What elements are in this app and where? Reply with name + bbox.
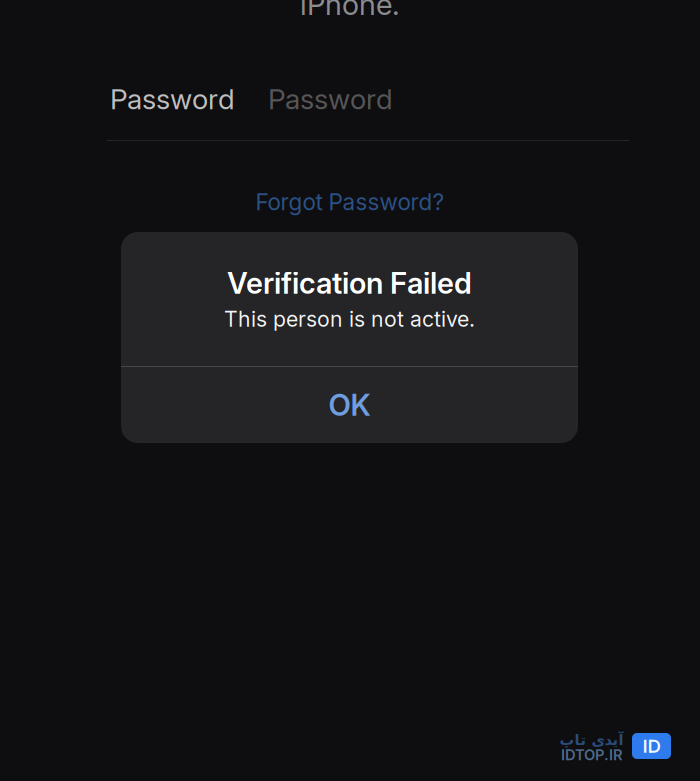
staticText: iPhone. (300, 0, 400, 22)
staticText: ID (642, 735, 660, 757)
staticText: آیدی تاپ (559, 731, 623, 749)
staticText: Password (110, 82, 235, 116)
staticText: Password (268, 82, 393, 116)
button[interactable]: OK (121, 367, 578, 443)
button[interactable]: Forgot Password? (0, 188, 700, 216)
staticText: OK (328, 387, 370, 423)
button[interactable]: Password (0, 84, 700, 141)
staticText: IDTOP.IR (561, 746, 623, 764)
staticText: Verification Failed (227, 265, 472, 301)
staticText: This person is not active. (224, 306, 475, 332)
staticText: Forgot Password? (255, 188, 444, 216)
